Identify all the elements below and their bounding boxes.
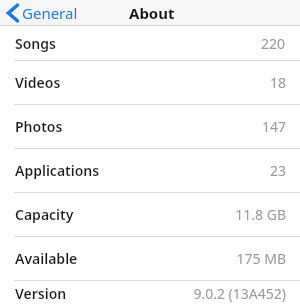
staticText: 147 (261, 117, 286, 136)
staticText: 9.0.2 (13A452) (193, 284, 286, 303)
staticText: Photos (15, 117, 63, 136)
staticText: Applications (15, 161, 100, 180)
staticText: 11.8 GB (235, 205, 286, 224)
staticText: 220 (261, 34, 286, 53)
button[interactable]: Songs (0, 26, 300, 60)
button[interactable]: Available (0, 237, 300, 280)
button[interactable]: Photos (0, 105, 300, 148)
staticText: Videos (15, 73, 61, 92)
button[interactable]: Version (0, 281, 300, 305)
button[interactable]: Capacity (0, 193, 300, 236)
staticText: 23 (269, 161, 286, 180)
staticText: Version (15, 284, 67, 303)
staticText: About (129, 3, 175, 23)
staticText: General (22, 3, 78, 23)
staticText: 18 (269, 73, 286, 92)
staticText: Available (15, 249, 78, 268)
staticText: Songs (15, 34, 56, 53)
staticText: 175 MB (236, 249, 286, 268)
staticText: Capacity (15, 205, 74, 224)
button[interactable]: Videos (0, 61, 300, 104)
button[interactable]: General (0, 0, 84, 26)
button[interactable]: Applications (0, 149, 300, 192)
